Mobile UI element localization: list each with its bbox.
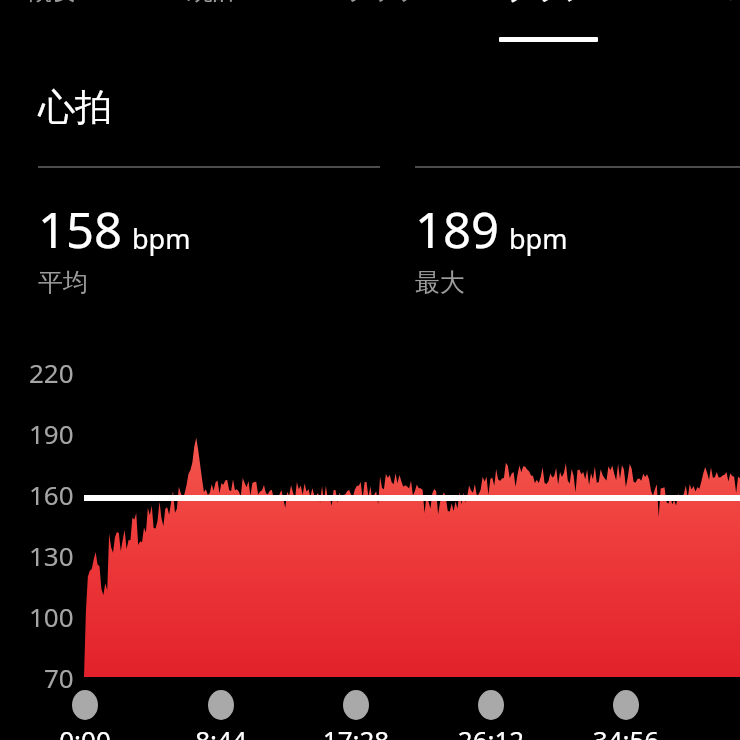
staticText: bpm [132,220,191,257]
staticText: 0:00 [25,722,145,740]
staticText: 160 [29,477,74,511]
staticText: 最大 [415,267,465,296]
staticText: 190 [29,416,74,450]
staticText: 統計 [153,0,273,7]
staticText: 158 [38,196,123,263]
staticText: 26:12 [431,722,551,740]
staticText: bpm [509,220,568,257]
staticText: 220 [29,355,74,389]
staticText: 17:28 [296,722,416,740]
staticText: グラフ [488,0,608,7]
staticText: 8:44 [161,722,281,740]
staticText: 平均 [38,267,88,296]
staticText: 心拍 [38,84,112,131]
staticText: 130 [29,538,74,572]
button[interactable]: 統計 [153,0,273,18]
other: Heart rate chart [0,0,740,740]
staticText: 100 [29,599,74,633]
staticText: 189 [415,196,500,263]
button[interactable]: 概要 [0,0,112,18]
staticText: 70 [44,660,74,694]
staticText: 34:56 [566,722,686,740]
button[interactable]: ラップ [323,0,443,18]
button[interactable]: 189 [415,196,715,296]
button[interactable]: 158 [38,196,338,296]
staticText: ラップ [323,0,443,7]
staticText: 概要 [0,0,112,7]
button[interactable]: グラフ [488,0,608,18]
